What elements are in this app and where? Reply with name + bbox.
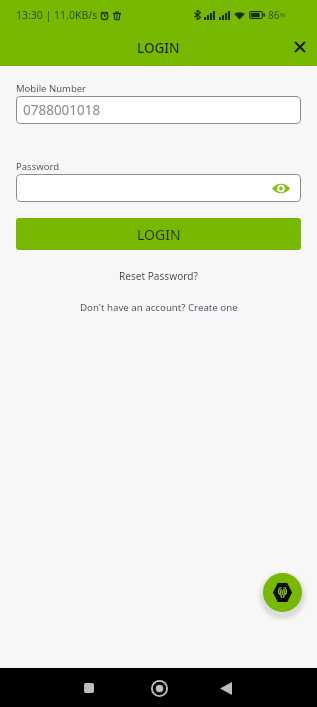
staticText: Don't have an account? xyxy=(80,301,188,314)
staticText: LOGIN xyxy=(137,225,181,244)
button[interactable]: Create one xyxy=(188,301,238,314)
staticText: Password xyxy=(16,160,59,173)
button[interactable]: Home xyxy=(147,676,171,700)
staticText: Reset Password? xyxy=(119,269,198,283)
staticText: Mobile Number xyxy=(16,82,87,95)
staticText: 86 xyxy=(268,8,280,22)
button[interactable]: Back xyxy=(214,676,238,700)
button[interactable]: LOGIN xyxy=(16,218,301,250)
button[interactable]: Reset Password? xyxy=(109,265,208,287)
button[interactable]: Show password xyxy=(271,178,291,198)
staticText: 0788001018 xyxy=(23,101,101,119)
button[interactable]: Close xyxy=(287,34,313,60)
staticText: % xyxy=(280,11,285,19)
staticText: 13:30 | 11.0KB/s xyxy=(16,8,98,22)
button[interactable]: Show password xyxy=(16,174,301,202)
button[interactable]: 0788001018 xyxy=(16,96,301,124)
staticText: LOGIN xyxy=(137,39,180,57)
staticText: Create one xyxy=(188,301,238,314)
button[interactable]: Recent apps xyxy=(77,676,101,700)
button[interactable]: Chat assistant xyxy=(263,573,302,612)
